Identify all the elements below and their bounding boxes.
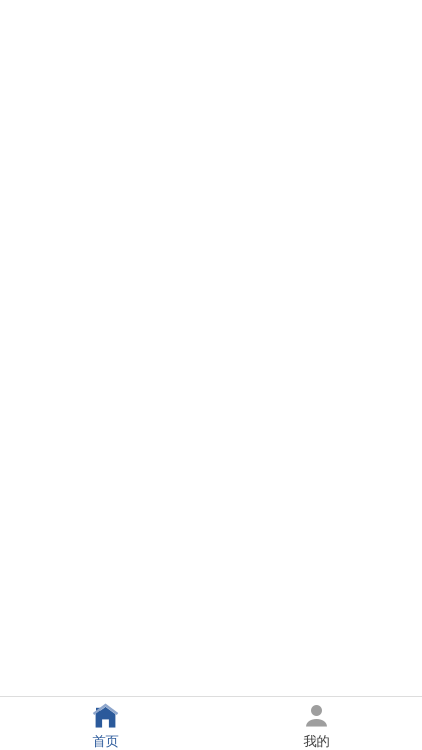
button[interactable]: 首页: [0, 703, 211, 749]
staticText: 我的: [303, 733, 329, 749]
button[interactable]: 我的: [211, 703, 422, 749]
staticText: 首页: [92, 733, 118, 749]
